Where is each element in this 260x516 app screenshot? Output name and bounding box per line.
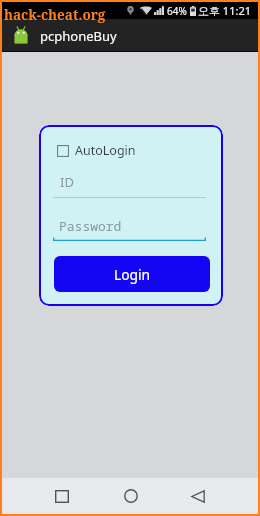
button[interactable]: Home: [109, 478, 153, 514]
staticText: AutoLogin: [75, 142, 136, 159]
staticText: hack-cheat.org: [4, 6, 106, 24]
staticText: pcphoneBuy: [40, 27, 117, 45]
staticText: Login: [114, 265, 151, 284]
button[interactable]: Login: [54, 256, 210, 292]
button[interactable]: Back: [176, 478, 220, 514]
staticText: 64%: [167, 4, 187, 18]
staticText: ID: [60, 173, 74, 191]
button[interactable]: Recent apps: [40, 478, 84, 514]
button[interactable]: AutoLogin: [57, 142, 136, 159]
staticText: Password: [59, 217, 122, 235]
staticText: 오후 11:21: [198, 3, 251, 18]
